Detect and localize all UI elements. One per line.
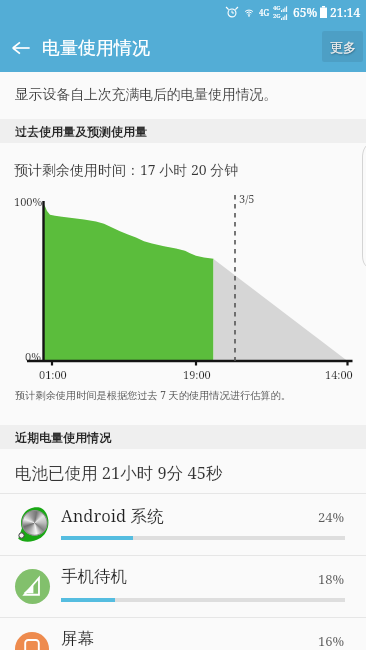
staticText: 预计剩余使用时间是根据您过去 7 天的使用情况进行估算的。 bbox=[15, 388, 291, 402]
staticText: 近期电量使用情况 bbox=[15, 430, 111, 445]
staticText: Android 系统 bbox=[61, 504, 164, 527]
staticText: 100% bbox=[14, 194, 43, 209]
staticText: 2G bbox=[273, 12, 281, 20]
staticText: 14:00 bbox=[325, 367, 353, 382]
staticText: 65% bbox=[293, 4, 318, 20]
staticText: 3/5 bbox=[239, 191, 255, 206]
staticText: 01:00 bbox=[39, 367, 67, 382]
staticText: 电池已使用 21小时 9分 45秒 bbox=[15, 461, 223, 484]
staticText: 4G bbox=[273, 4, 281, 12]
staticText: 19:00 bbox=[183, 367, 211, 382]
button[interactable]: 手机待机 bbox=[0, 556, 366, 617]
staticText: 屏幕 bbox=[61, 628, 94, 649]
button[interactable]: 屏幕 bbox=[0, 618, 366, 650]
button[interactable]: Back bbox=[0, 24, 42, 72]
staticText: 24% bbox=[318, 508, 345, 526]
staticText: 显示设备自上次充满电后的电量使用情况。 bbox=[15, 86, 278, 103]
staticText: 21:14 bbox=[330, 4, 361, 20]
staticText: 电量使用情况 bbox=[42, 37, 150, 60]
staticText: 手机待机 bbox=[61, 566, 127, 587]
staticText: 预计剩余使用时间：17 小时 20 分钟 bbox=[14, 160, 239, 179]
staticText: 更多 bbox=[330, 39, 356, 55]
button[interactable]: Android 系统 bbox=[0, 494, 366, 555]
staticText: 0% bbox=[25, 349, 42, 364]
staticText: 16% bbox=[318, 632, 345, 650]
staticText: 4G bbox=[259, 7, 270, 18]
staticText: 18% bbox=[318, 570, 345, 588]
staticText: 过去使用量及预测使用量 bbox=[15, 124, 147, 139]
button[interactable]: 更多 bbox=[322, 31, 363, 62]
